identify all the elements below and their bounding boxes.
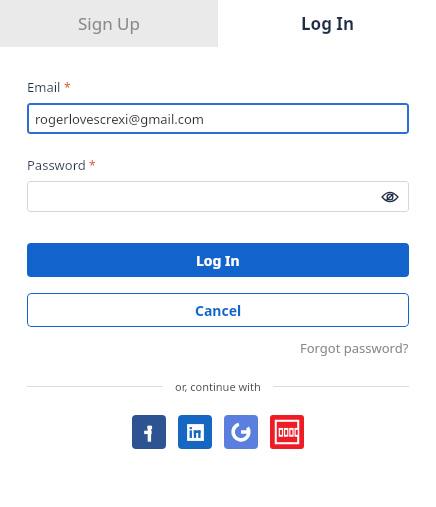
staticText: Cancel bbox=[195, 301, 242, 320]
button[interactable]: Log In bbox=[218, 0, 436, 47]
staticText: Log In bbox=[301, 12, 354, 35]
button[interactable]: Continue with LinkedIn bbox=[178, 415, 212, 449]
button[interactable]: Forgot password? bbox=[300, 339, 409, 357]
staticText: * bbox=[89, 157, 96, 173]
staticText: Forgot password? bbox=[300, 339, 409, 357]
staticText: rogerlovescrexi@gmail.com bbox=[35, 110, 205, 128]
button[interactable]: Show password bbox=[379, 186, 401, 208]
button[interactable]: Sign Up bbox=[0, 0, 218, 47]
button[interactable]: Cancel bbox=[27, 293, 409, 327]
button[interactable]: Continue with Google bbox=[224, 415, 258, 449]
button[interactable]: Continue with CCIM bbox=[270, 415, 304, 449]
staticText: Sign Up bbox=[78, 12, 140, 35]
button[interactable]: Continue with Facebook bbox=[132, 415, 166, 449]
button[interactable]: Log In bbox=[27, 243, 409, 277]
button[interactable]: rogerlovescrexi@gmail.com bbox=[27, 103, 409, 134]
staticText: * bbox=[64, 79, 71, 95]
staticText: or, continue with bbox=[175, 379, 261, 394]
staticText: Password bbox=[27, 156, 86, 174]
staticText: Log In bbox=[196, 251, 240, 270]
button[interactable]: Show password bbox=[27, 181, 409, 212]
staticText: Email bbox=[27, 78, 61, 96]
